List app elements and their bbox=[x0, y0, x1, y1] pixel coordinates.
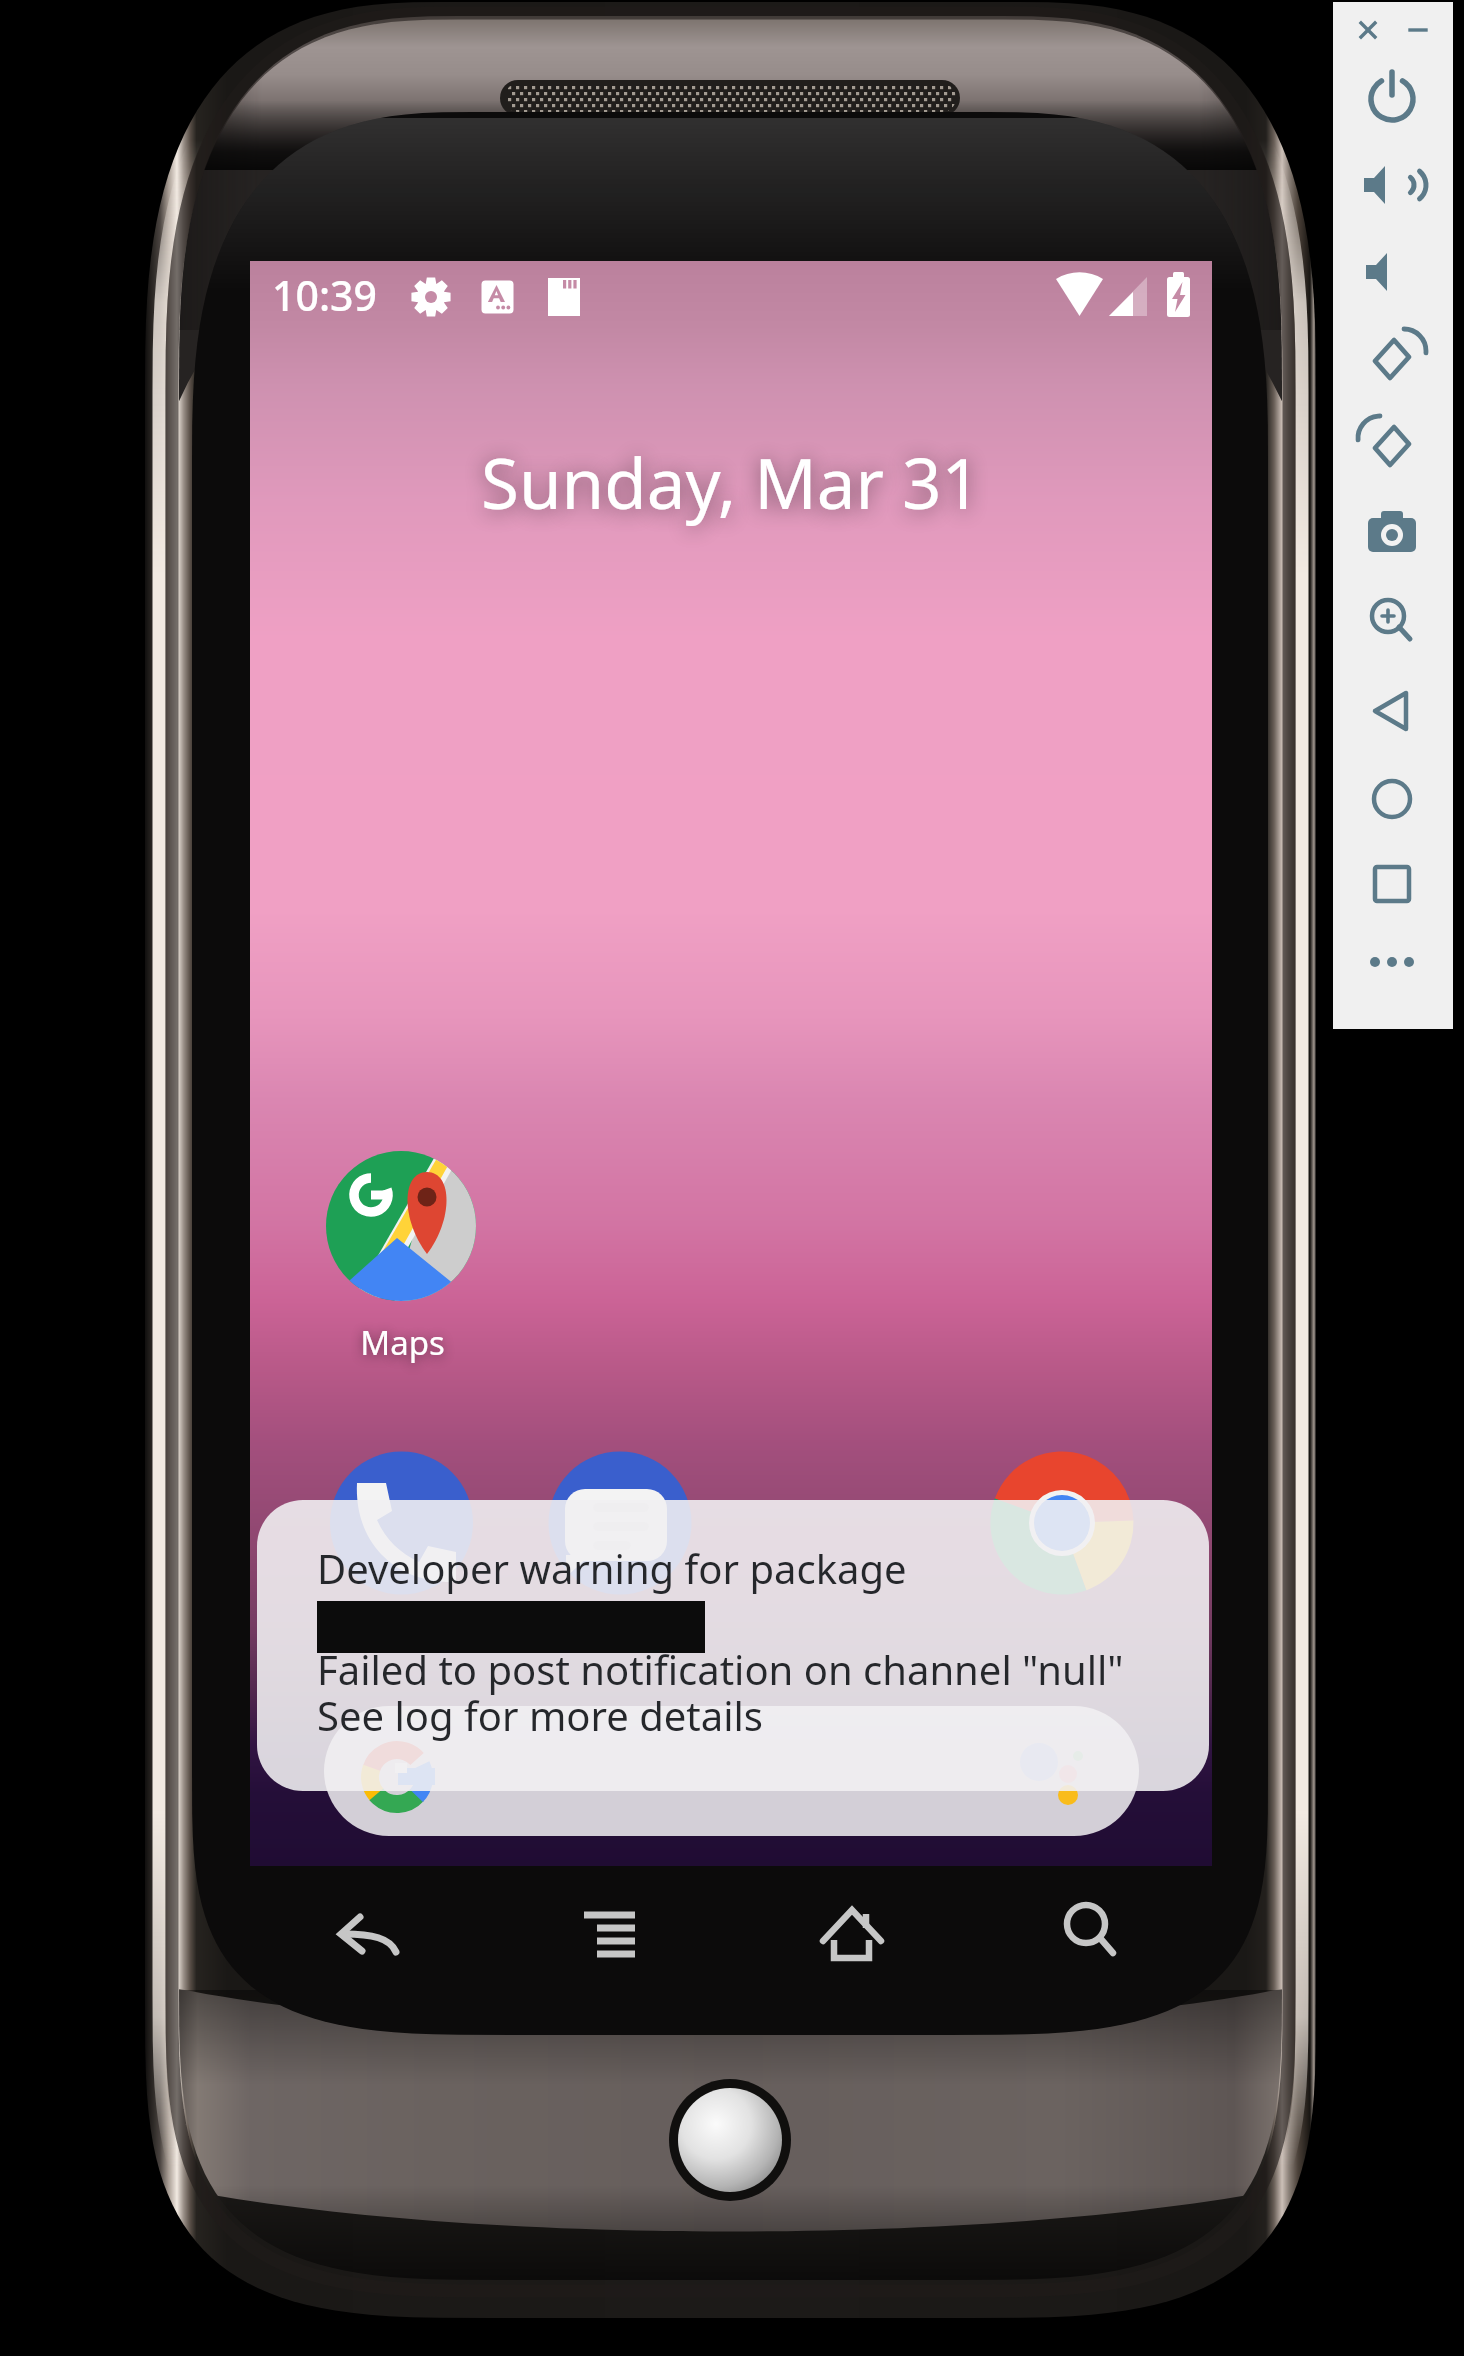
button[interactable]: Developer warning for package bbox=[257, 1500, 1209, 1791]
staticText: Failed to post notification on channel "… bbox=[317, 1642, 1124, 1743]
staticText: Maps bbox=[360, 1320, 445, 1365]
staticText: Developer warning for package bbox=[317, 1541, 907, 1595]
staticText: Sunday, Mar 31 bbox=[481, 435, 981, 529]
button[interactable]: Maps bbox=[322, 1148, 482, 1365]
button[interactable]: Sunday, Mar 31 bbox=[250, 434, 1212, 530]
staticText: 10:39 bbox=[272, 267, 377, 323]
